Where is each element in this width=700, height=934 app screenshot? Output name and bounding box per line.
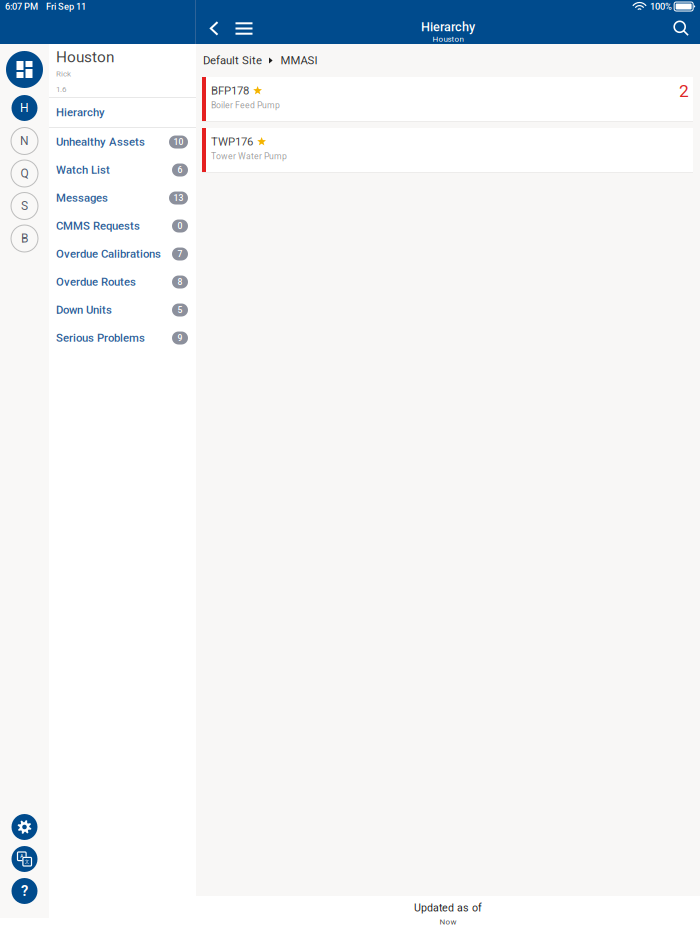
button[interactable]: Unhealthy Assets [49, 128, 196, 156]
staticText: CMMS Requests [56, 219, 140, 233]
button[interactable]: CMMS Requests [49, 212, 196, 240]
button[interactable]: S [10, 192, 38, 220]
staticText: 6:07 PM [5, 1, 38, 12]
staticText: 10 [173, 137, 183, 147]
button[interactable]: Back [203, 17, 225, 39]
staticText: Rick [56, 69, 71, 78]
staticText: 100% [650, 1, 672, 12]
staticText: 0 [177, 221, 182, 231]
button[interactable]: Serious Problems [49, 324, 196, 352]
button[interactable]: Search [670, 17, 692, 39]
button[interactable]: TWP176 [202, 128, 693, 173]
staticText: Down Units [56, 303, 112, 317]
staticText: 1.6 [56, 84, 66, 94]
staticText: Fri Sep 11 [46, 1, 86, 12]
button[interactable]: Down Units [49, 296, 196, 324]
staticText: Default Site [203, 54, 262, 67]
staticText: Unhealthy Assets [56, 135, 145, 149]
staticText: 5 [177, 305, 182, 315]
staticText: MMASI [281, 54, 318, 67]
staticText: Updated as of [414, 902, 482, 914]
button[interactable]: Watch List [49, 156, 196, 184]
button[interactable]: Overdue Calibrations [49, 240, 196, 268]
staticText: BFP178 [211, 84, 249, 97]
staticText: S [21, 199, 28, 213]
staticText: Houston [432, 34, 463, 44]
staticText: B [21, 231, 28, 246]
button[interactable]: Overdue Routes [49, 268, 196, 296]
button[interactable]: B [10, 224, 38, 252]
button[interactable]: Translate [11, 846, 37, 872]
button[interactable]: Q [10, 159, 38, 187]
staticText: Tower Water Pump [211, 151, 287, 161]
staticText: Hierarchy [56, 106, 105, 119]
staticText: Q [20, 166, 28, 181]
button[interactable]: H [11, 95, 37, 121]
button[interactable]: Dashboard [6, 51, 43, 88]
staticText: 13 [173, 193, 183, 203]
staticText: 文 [25, 859, 30, 865]
button[interactable]: Settings [11, 814, 37, 840]
staticText: A [20, 854, 23, 859]
staticText: 7 [177, 249, 182, 259]
staticText: N [20, 134, 29, 148]
staticText: Now [439, 917, 456, 926]
staticText: Overdue Routes [56, 275, 136, 289]
staticText: H [20, 101, 29, 115]
staticText: Boiler Feed Pump [211, 100, 280, 110]
button[interactable]: Menu [233, 17, 255, 39]
button[interactable]: BFP178 [202, 77, 693, 122]
staticText: Messages [56, 191, 108, 205]
button[interactable]: Hierarchy [49, 98, 196, 126]
staticText: 8 [177, 277, 182, 287]
staticText: Serious Problems [56, 331, 145, 345]
button[interactable]: N [10, 127, 38, 155]
staticText: ? [21, 882, 28, 900]
button[interactable]: Messages [49, 184, 196, 212]
staticText: Hierarchy [421, 19, 475, 34]
staticText: 6 [177, 165, 182, 175]
button[interactable]: Help [11, 878, 37, 904]
staticText: 2 [679, 81, 689, 101]
staticText: Overdue Calibrations [56, 247, 161, 261]
staticText: Watch List [56, 163, 110, 177]
staticText: TWP176 [211, 135, 253, 148]
staticText: Houston [56, 48, 114, 66]
staticText: 9 [177, 333, 182, 343]
